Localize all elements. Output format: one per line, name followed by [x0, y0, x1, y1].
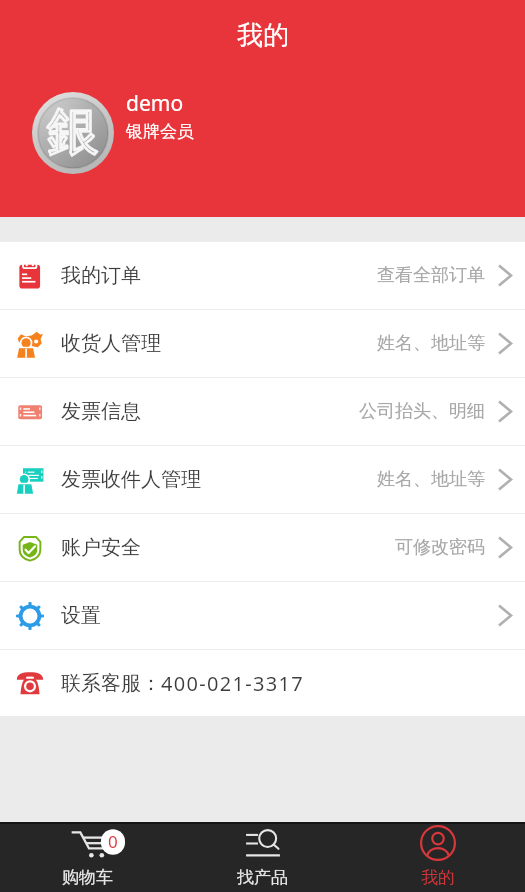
staticText: 我的 — [237, 19, 289, 52]
staticText: 0 — [108, 830, 118, 853]
staticText: 找产品 — [237, 867, 288, 888]
staticText: 400-021-3317 — [161, 670, 304, 697]
button[interactable]: 发票信息 — [0, 378, 525, 445]
button[interactable]: 0 — [0, 824, 175, 892]
staticText: 公司抬头、明细 — [359, 400, 485, 423]
staticText: 银牌会员 — [126, 121, 194, 142]
button[interactable]: 我的订单 — [0, 242, 525, 309]
staticText: 账户安全 — [61, 535, 141, 560]
button[interactable]: 我的 — [350, 824, 525, 892]
staticText: 购物车 — [62, 867, 113, 888]
staticText: 发票收件人管理 — [61, 467, 201, 492]
staticText: 联系客服： — [61, 671, 161, 696]
staticText: 发票信息 — [61, 399, 141, 424]
staticText: demo — [126, 89, 184, 118]
button[interactable]: 找产品 — [175, 824, 350, 892]
staticText: 查看全部订单 — [377, 264, 485, 287]
button[interactable]: 联系客服： — [0, 650, 525, 716]
button[interactable]: 账户安全 — [0, 514, 525, 581]
staticText: 设置 — [61, 603, 101, 628]
button[interactable]: 设置 — [0, 582, 525, 649]
staticText: 銀 — [47, 99, 99, 165]
staticText: 姓名、地址等 — [377, 332, 485, 355]
staticText: 收货人管理 — [61, 331, 161, 356]
button[interactable]: 收货人管理 — [0, 310, 525, 377]
staticText: 我的订单 — [61, 263, 141, 288]
staticText: 我的 — [421, 867, 455, 888]
staticText: 姓名、地址等 — [377, 468, 485, 491]
button[interactable]: 发票收件人管理 — [0, 446, 525, 513]
staticText: 可修改密码 — [395, 536, 485, 559]
